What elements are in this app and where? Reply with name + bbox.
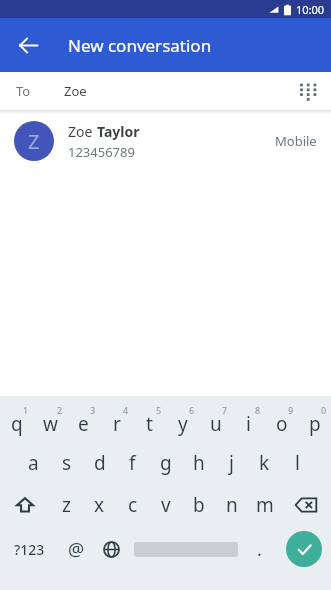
staticText: 2 — [57, 404, 63, 416]
button[interactable]: Back — [6, 23, 50, 67]
staticText: q — [11, 411, 23, 437]
button[interactable]: Z — [0, 114, 331, 168]
staticText: ?123 — [14, 540, 45, 559]
staticText: 8 — [255, 404, 261, 416]
button[interactable]: Backspace — [281, 484, 331, 526]
button[interactable]: . — [242, 526, 277, 572]
button[interactable]: h — [182, 442, 215, 484]
button[interactable]: n — [215, 484, 248, 526]
staticText: s — [62, 450, 72, 476]
staticText: 0 — [321, 404, 327, 416]
button[interactable]: Done — [277, 526, 331, 572]
staticText: g — [160, 450, 172, 476]
button[interactable]: z — [50, 484, 83, 526]
staticText: 123456789 — [68, 143, 135, 161]
staticText: e — [78, 411, 89, 437]
button[interactable]: d — [83, 442, 116, 484]
staticText: v — [161, 492, 171, 518]
staticText: Zoe — [68, 122, 97, 141]
staticText: 10:00 — [296, 2, 325, 17]
staticText: u — [210, 411, 222, 437]
staticText: d — [94, 450, 106, 476]
staticText: Zoe — [64, 82, 87, 100]
button[interactable]: Change language — [94, 526, 129, 572]
button[interactable]: Dial pad — [289, 73, 325, 109]
staticText: . — [257, 537, 262, 562]
staticText: New conversation — [68, 34, 212, 57]
staticText: f — [129, 450, 136, 476]
button[interactable]: s — [50, 442, 83, 484]
button[interactable]: e — [67, 400, 100, 442]
staticText: 5 — [156, 404, 162, 416]
button[interactable]: v — [149, 484, 182, 526]
staticText: t — [146, 411, 153, 437]
staticText: Mobile — [275, 132, 317, 150]
staticText: 1 — [23, 404, 29, 416]
button[interactable]: p — [298, 400, 331, 442]
button[interactable]: a — [17, 442, 50, 484]
button[interactable]: x — [83, 484, 116, 526]
staticText: y — [178, 411, 188, 437]
button[interactable]: c — [116, 484, 149, 526]
staticText: h — [193, 450, 205, 476]
button[interactable]: w — [34, 400, 67, 442]
button[interactable]: @ — [59, 526, 94, 572]
staticText: l — [295, 450, 300, 476]
button[interactable]: j — [215, 442, 248, 484]
staticText: p — [309, 411, 321, 437]
staticText: o — [276, 411, 288, 437]
button[interactable]: m — [248, 484, 281, 526]
staticText: 4 — [123, 404, 129, 416]
button[interactable]: o — [265, 400, 298, 442]
staticText: Z — [28, 128, 40, 155]
staticText: a — [28, 450, 39, 476]
staticText: r — [113, 411, 121, 437]
button[interactable]: l — [281, 442, 314, 484]
button[interactable]: ?123 — [0, 526, 59, 572]
button[interactable]: b — [182, 484, 215, 526]
button[interactable]: g — [149, 442, 182, 484]
button[interactable]: k — [248, 442, 281, 484]
button[interactable]: Space — [129, 526, 242, 572]
button[interactable]: y — [166, 400, 199, 442]
button[interactable]: r — [100, 400, 133, 442]
staticText: w — [43, 411, 58, 437]
staticText: 9 — [288, 404, 294, 416]
staticText: @ — [68, 537, 85, 562]
staticText: 7 — [222, 404, 228, 416]
staticText: b — [193, 492, 205, 518]
button[interactable]: f — [116, 442, 149, 484]
button[interactable]: q — [0, 400, 34, 442]
staticText: i — [246, 411, 251, 437]
staticText: k — [259, 450, 270, 476]
staticText: j — [229, 450, 234, 476]
staticText: To — [16, 82, 31, 100]
staticText: 3 — [90, 404, 96, 416]
staticText: x — [94, 492, 105, 518]
button[interactable]: Shift — [0, 484, 50, 526]
staticText: z — [62, 492, 71, 518]
button[interactable]: u — [199, 400, 232, 442]
staticText: c — [128, 492, 138, 518]
staticText: m — [256, 492, 274, 518]
staticText: Taylor — [97, 122, 140, 141]
button[interactable]: t — [133, 400, 166, 442]
staticText: 6 — [189, 404, 195, 416]
staticText: n — [226, 492, 238, 518]
button[interactable]: i — [232, 400, 265, 442]
